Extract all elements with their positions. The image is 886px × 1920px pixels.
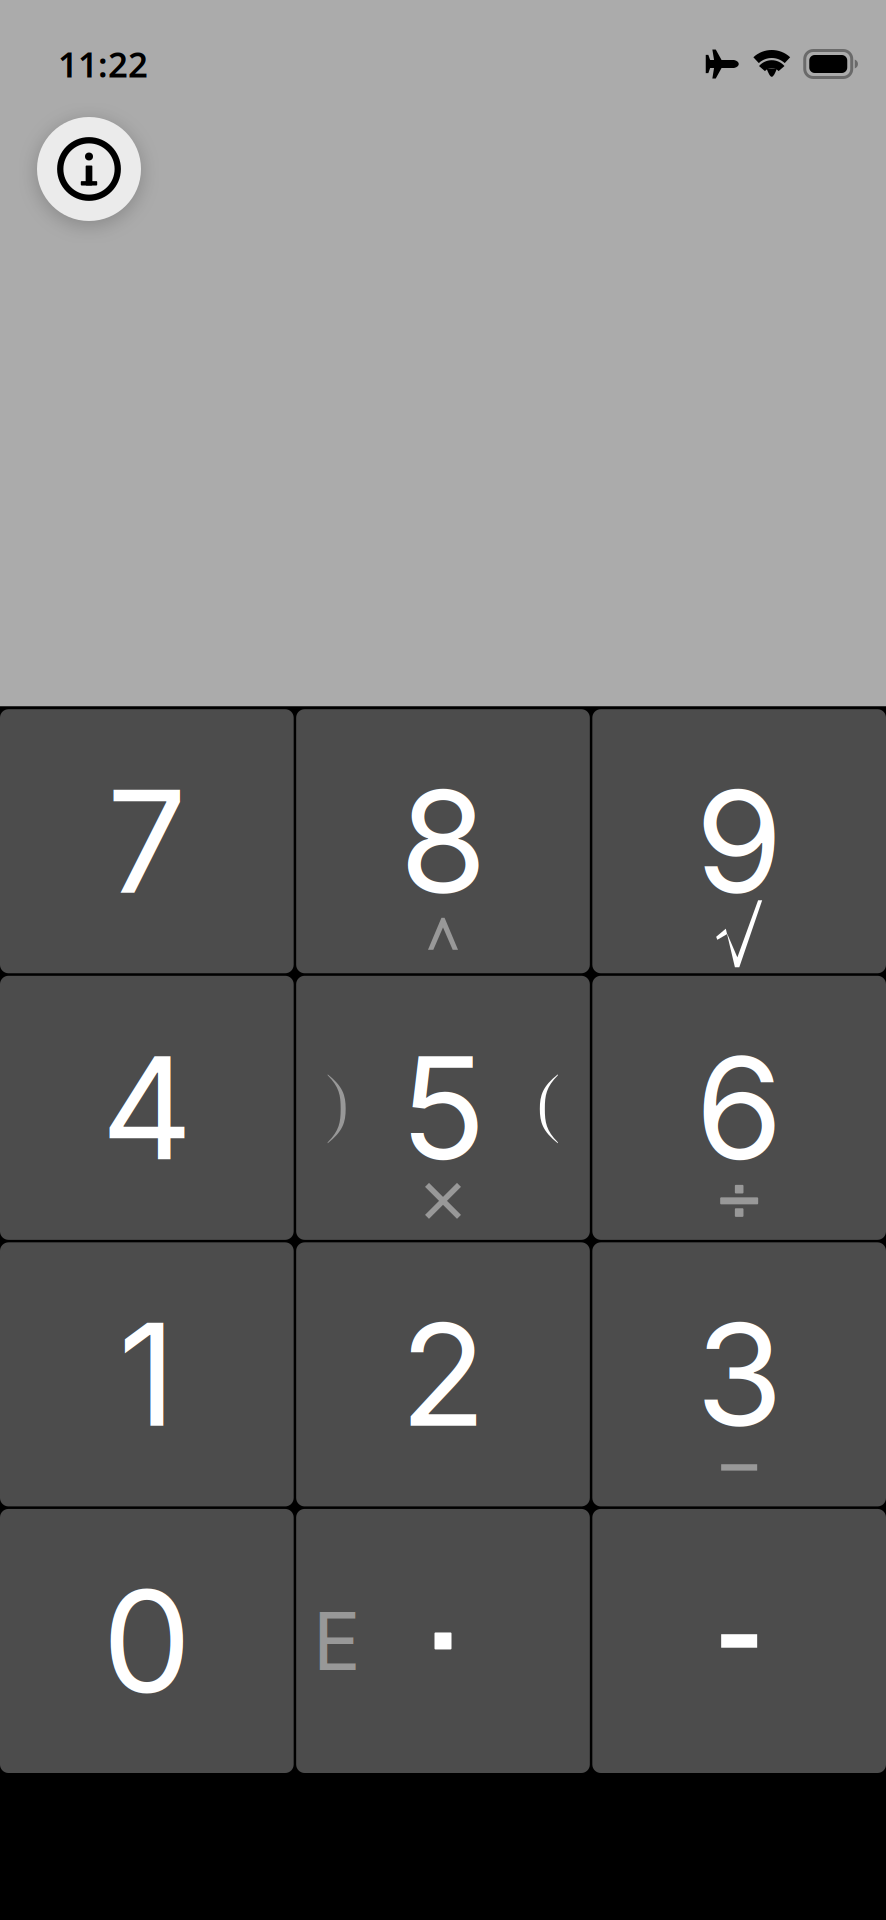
staticText: 2 [400,1289,486,1460]
staticText: 0 [102,1555,191,1726]
staticText: 3 [696,1289,783,1460]
button[interactable]: 2 [296,1242,590,1506]
button[interactable]: 1 [0,1242,294,1506]
staticText: 11:22 [58,41,148,87]
staticText: 4 [101,1022,192,1193]
staticText: 5 [400,1022,486,1193]
button[interactable]: 8, power [296,709,590,973]
staticText: 9 [695,756,783,927]
button[interactable]: 0 [0,1509,294,1773]
button[interactable]: Info [37,117,141,221]
staticText: 6 [695,1022,783,1193]
button[interactable]: 5, multiply, parentheses [296,976,590,1240]
staticText: 1 [118,1289,175,1460]
button[interactable]: 6, divide [592,976,886,1240]
staticText: 7 [107,756,187,927]
button[interactable]: minus [592,1509,886,1773]
button[interactable]: 9, square root [592,709,886,973]
button[interactable]: 4 [0,976,294,1240]
button[interactable]: decimal point, exponent [296,1509,590,1773]
button[interactable]: 7 [0,709,294,973]
staticText: 8 [399,756,486,927]
button[interactable]: 3, subtract [592,1242,886,1506]
staticText: E [313,1593,361,1689]
